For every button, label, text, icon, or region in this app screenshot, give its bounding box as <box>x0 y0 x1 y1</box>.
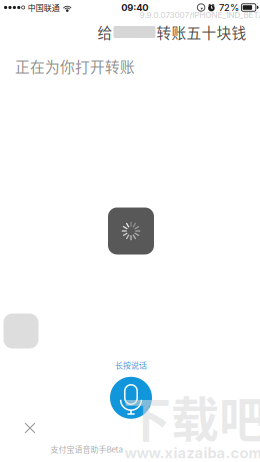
staticText: 9.9.0.073007/IPHONE_1ND_BETA <box>139 10 260 20</box>
staticText: 转账五十块钱 <box>156 21 246 43</box>
staticText: 72% <box>219 2 239 13</box>
staticText: 09:40 <box>121 2 148 13</box>
staticText: 正在为你打开转账 <box>15 55 135 77</box>
button[interactable]: Press and hold to speak <box>110 377 152 419</box>
staticText: 长按说话 <box>115 359 147 371</box>
staticText: 中国联通 <box>28 2 60 13</box>
staticText: 支付宝语音助手Beta <box>50 443 123 455</box>
button[interactable]: Close <box>13 411 46 444</box>
staticText: www.xiazaiba.com <box>124 444 260 462</box>
staticText: 下载吧 <box>123 381 260 451</box>
staticText: 给 <box>97 21 112 43</box>
